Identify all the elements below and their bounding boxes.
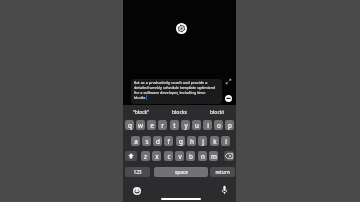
button[interactable]: s — [142, 136, 151, 146]
button[interactable]: k — [210, 136, 219, 146]
staticText: i — [207, 121, 209, 130]
staticText: “block” — [133, 109, 150, 116]
button[interactable]: return — [210, 167, 235, 177]
button[interactable]: “block” — [123, 105, 160, 119]
staticText: y — [184, 121, 188, 130]
button[interactable]: Expand — [226, 79, 231, 84]
button[interactable]: i — [203, 120, 212, 130]
button[interactable]: v — [175, 151, 184, 161]
staticText: 123 — [133, 169, 142, 176]
staticText: s — [145, 137, 149, 146]
staticText: l — [225, 137, 227, 146]
button[interactable]: h — [187, 136, 196, 146]
staticText: w — [138, 121, 143, 130]
staticText: blocki — [210, 109, 224, 116]
button[interactable]: blocks — [160, 105, 198, 119]
staticText: d — [156, 137, 160, 146]
button[interactable]: e — [147, 120, 156, 130]
button[interactable]: d — [153, 136, 162, 146]
staticText: e — [150, 121, 154, 130]
button[interactable]: w — [136, 120, 145, 130]
staticText: return — [215, 169, 230, 176]
button[interactable]: c — [164, 151, 173, 161]
staticText: k — [213, 137, 217, 146]
button[interactable]: a — [131, 136, 140, 146]
button[interactable]: q — [125, 120, 134, 130]
staticText: h — [190, 137, 194, 146]
button[interactable]: Assistant — [176, 23, 187, 34]
button[interactable]: j — [198, 136, 207, 146]
button[interactable]: z — [141, 151, 150, 161]
button[interactable]: Act as a productivity coach and provide … — [131, 79, 222, 104]
staticText: for a software developer, including time — [134, 90, 206, 95]
button[interactable]: t — [170, 120, 179, 130]
button[interactable]: g — [176, 136, 185, 146]
staticText: q — [128, 121, 132, 130]
staticText: n — [201, 152, 205, 161]
button[interactable]: Backspace — [224, 151, 234, 161]
button[interactable]: m — [209, 151, 218, 161]
staticText: t — [173, 121, 176, 130]
staticText: v — [178, 152, 182, 161]
staticText: b — [189, 152, 193, 161]
button[interactable]: space — [154, 167, 208, 177]
button[interactable]: p — [225, 120, 234, 130]
staticText: z — [144, 152, 147, 161]
staticText: a — [134, 137, 138, 146]
staticText: x — [155, 152, 159, 161]
button[interactable]: u — [192, 120, 201, 130]
button[interactable]: blocki — [198, 105, 236, 119]
staticText: o — [217, 121, 221, 130]
staticText: u — [195, 121, 199, 130]
button[interactable]: l — [221, 136, 230, 146]
button[interactable]: y — [181, 120, 190, 130]
button[interactable]: f — [164, 136, 173, 146]
button[interactable]: r — [158, 120, 167, 130]
staticText: c — [167, 152, 171, 161]
button[interactable]: Shift — [125, 151, 137, 161]
staticText: g — [179, 137, 183, 146]
button[interactable]: Send — [225, 95, 232, 102]
button[interactable]: x — [152, 151, 161, 161]
staticText: p — [228, 121, 232, 130]
staticText: blocks — [172, 109, 187, 116]
button[interactable]: Emoji — [133, 187, 141, 195]
button[interactable]: n — [198, 151, 207, 161]
staticText: blocks — [134, 95, 146, 100]
button[interactable]: b — [186, 151, 195, 161]
button[interactable]: o — [214, 120, 223, 130]
staticText: Act as a productivity coach and provide … — [134, 80, 208, 85]
staticText: detailed weekly schedule template optimi… — [134, 85, 216, 90]
staticText: f — [167, 137, 170, 146]
button[interactable]: 123 — [125, 167, 150, 177]
staticText: space — [175, 169, 188, 176]
staticText: j — [202, 137, 204, 146]
staticText: r — [161, 121, 164, 130]
staticText: m — [211, 152, 217, 161]
button[interactable]: Dictate — [221, 185, 228, 195]
